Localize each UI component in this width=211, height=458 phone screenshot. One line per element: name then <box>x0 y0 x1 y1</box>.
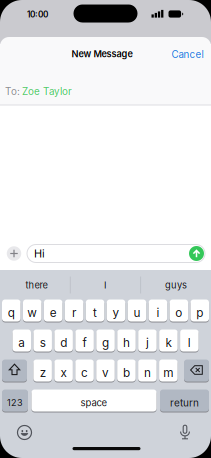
staticText: w <box>27 306 37 320</box>
button[interactable]: o <box>170 299 188 322</box>
staticText: e <box>50 306 57 320</box>
staticText: s <box>40 336 46 350</box>
button[interactable]: h <box>117 329 136 352</box>
staticText: d <box>60 336 67 350</box>
button[interactable]: guys <box>143 273 209 297</box>
staticText: space <box>80 397 107 409</box>
button[interactable]: n <box>138 359 157 382</box>
button[interactable]: e <box>44 299 62 322</box>
staticText: c <box>81 366 88 380</box>
staticText: 10:00 <box>27 9 48 19</box>
staticText: i <box>156 306 159 320</box>
button[interactable]: x <box>54 359 73 382</box>
button[interactable] <box>14 422 34 442</box>
button[interactable] <box>184 359 209 382</box>
staticText: y <box>112 306 119 320</box>
staticText: return <box>170 397 199 409</box>
staticText: Cancel <box>171 49 203 60</box>
staticText: p <box>196 306 203 320</box>
button[interactable]: Cancel <box>171 49 203 60</box>
staticText: f <box>83 336 87 350</box>
button[interactable]: r <box>65 299 83 322</box>
staticText: To: <box>5 85 20 97</box>
button[interactable]: q <box>2 299 20 322</box>
button[interactable]: space <box>31 389 156 412</box>
button[interactable]: k <box>159 329 178 352</box>
staticText: v <box>102 366 109 380</box>
button[interactable] <box>2 359 27 382</box>
staticText: u <box>133 306 140 320</box>
staticText: z <box>40 366 46 380</box>
button[interactable]: w <box>23 299 41 322</box>
staticText: Zoe Taylor <box>22 85 72 97</box>
button[interactable]: t <box>86 299 104 322</box>
staticText: there <box>25 279 47 291</box>
button[interactable]: return <box>160 389 209 412</box>
button[interactable]: a <box>12 329 31 352</box>
staticText: guys <box>165 279 187 291</box>
button[interactable] <box>7 246 21 261</box>
button[interactable]: d <box>54 329 73 352</box>
staticText: New Message <box>71 48 132 59</box>
staticText: 123 <box>7 397 23 408</box>
staticText: j <box>146 336 149 350</box>
button[interactable]: f <box>75 329 94 352</box>
staticText: t <box>93 306 97 320</box>
button[interactable]: c <box>75 359 94 382</box>
button[interactable]: u <box>128 299 146 322</box>
button[interactable]: y <box>107 299 125 322</box>
button[interactable]: g <box>96 329 115 352</box>
button[interactable]: 123 <box>2 389 28 412</box>
staticText: h <box>123 336 130 350</box>
staticText: q <box>8 306 15 320</box>
staticText: g <box>102 336 109 350</box>
button[interactable]: m <box>159 359 178 382</box>
button[interactable]: b <box>117 359 136 382</box>
staticText: o <box>175 306 182 320</box>
staticText: a <box>18 336 25 350</box>
button[interactable] <box>189 246 204 261</box>
staticText: l <box>188 336 191 350</box>
staticText: n <box>144 366 151 380</box>
button[interactable]: s <box>33 329 52 352</box>
button[interactable]: p <box>190 299 209 322</box>
button[interactable]: I <box>72 273 138 297</box>
button[interactable]: there <box>3 273 69 297</box>
staticText: I <box>104 279 107 291</box>
staticText: k <box>165 336 171 350</box>
staticText: x <box>61 366 67 380</box>
staticText: m <box>163 366 173 380</box>
staticText: r <box>72 306 76 320</box>
staticText: b <box>123 366 130 380</box>
button[interactable] <box>0 0 211 458</box>
button[interactable]: v <box>96 359 115 382</box>
staticText: Hi <box>34 247 45 260</box>
button[interactable]: l <box>180 329 199 352</box>
button[interactable]: j <box>138 329 157 352</box>
button[interactable]: i <box>149 299 167 322</box>
button[interactable]: z <box>33 359 52 382</box>
